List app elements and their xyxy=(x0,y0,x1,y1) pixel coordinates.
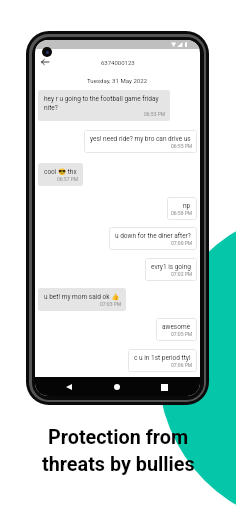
staticText: 06:57 PM xyxy=(57,176,79,182)
staticText: u bet! my mom said ok 👍 xyxy=(44,293,120,301)
staticText: u down for the diner after? xyxy=(115,232,191,240)
button[interactable]: np xyxy=(167,197,197,220)
staticText: 07:03 PM xyxy=(100,301,122,307)
button[interactable]: Back xyxy=(38,55,51,68)
button[interactable]: evry1 is going xyxy=(145,258,197,281)
staticText: 06:55 PM xyxy=(171,143,193,149)
staticText: evry1 is going xyxy=(151,263,191,271)
staticText: Protection from xyxy=(48,426,189,449)
staticText: threats by bullies xyxy=(42,453,195,476)
button[interactable]: u down for the diner after? xyxy=(109,227,197,250)
button[interactable]: yes! need ride? my bro can drive us xyxy=(84,130,197,153)
staticText: np xyxy=(183,202,191,210)
button[interactable]: awesome xyxy=(156,318,197,341)
button[interactable]: c u in 1st period ttyl xyxy=(128,349,197,372)
staticText: c u in 1st period ttyl xyxy=(134,354,191,362)
staticText: 6374000123 xyxy=(101,59,135,66)
button[interactable]: cool 😎 thx xyxy=(38,163,83,186)
button[interactable]: hey r u going to the football game frida… xyxy=(38,90,170,121)
button[interactable]: u bet! my mom said ok 👍 xyxy=(38,288,126,311)
button[interactable]: Recents xyxy=(155,378,173,396)
staticText: hey r u going to the football game frida… xyxy=(44,95,164,111)
staticText: Tuesday, 31 May 2022 xyxy=(87,77,148,84)
staticText: 07:05 PM xyxy=(171,331,193,337)
staticText: 06:58 PM xyxy=(171,210,193,216)
staticText: 07:02 PM xyxy=(171,271,193,277)
staticText: 06:53 PM xyxy=(144,111,166,117)
staticText: cool 😎 thx xyxy=(44,168,77,176)
button[interactable]: Home xyxy=(108,378,126,396)
staticText: yes! need ride? my bro can drive us xyxy=(90,135,191,143)
staticText: 07:00 PM xyxy=(171,240,193,246)
staticText: awesome xyxy=(162,323,191,331)
staticText: 07:06 PM xyxy=(171,362,193,368)
button[interactable]: Back xyxy=(60,378,78,396)
